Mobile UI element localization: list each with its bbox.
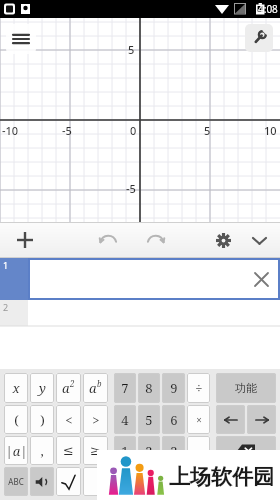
staticText: 5 xyxy=(128,42,135,57)
button[interactable]: ABC xyxy=(4,467,28,496)
staticText: . xyxy=(147,473,151,491)
button[interactable]: Settings xyxy=(208,225,238,255)
staticText: -10 xyxy=(2,123,19,138)
button[interactable]: 1 xyxy=(0,258,280,300)
staticText: 3 xyxy=(170,442,178,460)
button[interactable]: enter xyxy=(216,467,276,496)
staticText: ÷ xyxy=(195,379,203,397)
button[interactable]: 9 xyxy=(162,373,185,403)
button[interactable]: 5 xyxy=(138,405,160,434)
staticText: 0 xyxy=(130,123,137,138)
staticText: 7 xyxy=(121,379,129,397)
staticText: b xyxy=(97,378,102,389)
button[interactable]: × xyxy=(187,405,210,434)
staticText: 1 xyxy=(121,442,129,460)
button[interactable]: Collapse keypad xyxy=(244,225,274,255)
button[interactable]: arrowR xyxy=(247,405,276,434)
staticText: + xyxy=(195,473,203,491)
button[interactable]: blank xyxy=(83,467,108,496)
button[interactable]: Add expression xyxy=(8,223,42,257)
button[interactable]: > xyxy=(83,405,108,434)
button[interactable]: 功能 xyxy=(216,373,276,403)
button[interactable]: + xyxy=(187,467,210,496)
staticText: a xyxy=(89,379,97,397)
button[interactable]: Clear expression xyxy=(248,266,274,292)
button[interactable]: ≤ xyxy=(56,436,81,465)
button[interactable]: − xyxy=(187,436,210,465)
button[interactable]: x xyxy=(4,373,28,403)
staticText: |a| xyxy=(5,442,28,460)
button[interactable]: ≥ xyxy=(83,436,108,465)
button[interactable]: arrowL xyxy=(216,405,245,434)
button[interactable]: 3 xyxy=(162,436,185,465)
button[interactable]: ( xyxy=(4,405,28,434)
staticText: 10 xyxy=(264,123,277,138)
staticText: 6 xyxy=(170,411,178,429)
button[interactable]: a xyxy=(83,373,108,403)
staticText: y xyxy=(39,379,46,397)
button[interactable]: 7 xyxy=(114,373,136,403)
staticText: 9 xyxy=(170,379,178,397)
button[interactable]: 2 xyxy=(138,436,160,465)
staticText: ABC xyxy=(8,476,24,487)
button[interactable]: a xyxy=(56,373,81,403)
staticText: -5 xyxy=(126,181,136,196)
button[interactable]: 4 xyxy=(114,405,136,434)
staticText: ≥ xyxy=(90,443,101,458)
staticText: 2 xyxy=(145,442,153,460)
button[interactable]: ) xyxy=(30,405,54,434)
staticText: 上场软件园 xyxy=(169,464,274,490)
staticText: 1 xyxy=(3,259,9,271)
button[interactable]: Graph settings xyxy=(245,24,273,52)
button[interactable]: sqrt xyxy=(56,467,81,496)
staticText: -5 xyxy=(62,123,72,138)
button[interactable]: 6 xyxy=(162,405,185,434)
staticText: 5 xyxy=(145,411,153,429)
button[interactable]: . xyxy=(138,467,160,496)
button[interactable]: Redo xyxy=(141,225,171,255)
staticText: , xyxy=(40,442,44,460)
staticText: 5 xyxy=(204,123,211,138)
staticText: ( xyxy=(14,411,19,429)
staticText: ) xyxy=(40,411,45,429)
button[interactable]: ÷ xyxy=(187,373,210,403)
button[interactable]: 0 xyxy=(114,467,136,496)
button[interactable]: 2 xyxy=(0,300,280,326)
button[interactable]: |a| xyxy=(4,436,28,465)
staticText: < xyxy=(65,411,73,429)
staticText: 4:08 xyxy=(258,2,278,16)
button[interactable]: Undo xyxy=(93,225,123,255)
staticText: 2 xyxy=(3,301,9,313)
staticText: ≤ xyxy=(63,443,74,458)
staticText: 功能 xyxy=(235,381,257,395)
button[interactable]: backspace xyxy=(216,436,276,465)
button[interactable]: 1 xyxy=(114,436,136,465)
staticText: 8 xyxy=(145,379,153,397)
staticText: 4 xyxy=(121,411,129,429)
button[interactable]: speaker xyxy=(30,467,54,496)
staticText: > xyxy=(92,411,100,429)
button[interactable]: 8 xyxy=(138,373,160,403)
staticText: 0 xyxy=(121,473,129,491)
staticText: × xyxy=(196,413,202,427)
button[interactable]: Menu xyxy=(6,24,36,54)
button[interactable]: , xyxy=(30,436,54,465)
button[interactable]: < xyxy=(56,405,81,434)
staticText: x xyxy=(12,379,20,397)
staticText: 2 xyxy=(70,378,75,389)
staticText: a xyxy=(62,379,70,397)
button[interactable]: blank xyxy=(162,467,185,496)
button[interactable]: y xyxy=(30,373,54,403)
